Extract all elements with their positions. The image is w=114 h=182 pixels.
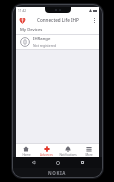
staticText: Connected Life IHP — [37, 17, 79, 23]
staticText: My Devices — [20, 27, 43, 33]
staticText: Notifications — [59, 153, 77, 157]
button[interactable]: Home — [53, 158, 62, 167]
staticText: Not registered — [33, 43, 57, 48]
staticText: More — [85, 153, 93, 157]
button[interactable]: Recents — [78, 158, 87, 167]
staticText: IHRange — [33, 36, 51, 42]
button[interactable]: Advances — [36, 144, 57, 157]
button[interactable]: Back — [29, 158, 38, 167]
button[interactable]: More options — [90, 14, 99, 26]
staticText: Advances — [40, 153, 53, 157]
staticText: NOKIA — [48, 170, 67, 176]
button[interactable]: IHRange — [16, 35, 99, 49]
button[interactable]: More — [78, 144, 99, 157]
staticText: 11:42 — [18, 9, 27, 13]
button[interactable]: App logo — [18, 16, 26, 24]
staticText: Home — [22, 153, 31, 157]
button[interactable]: Home — [16, 144, 36, 157]
button[interactable]: Notifications — [57, 144, 78, 157]
